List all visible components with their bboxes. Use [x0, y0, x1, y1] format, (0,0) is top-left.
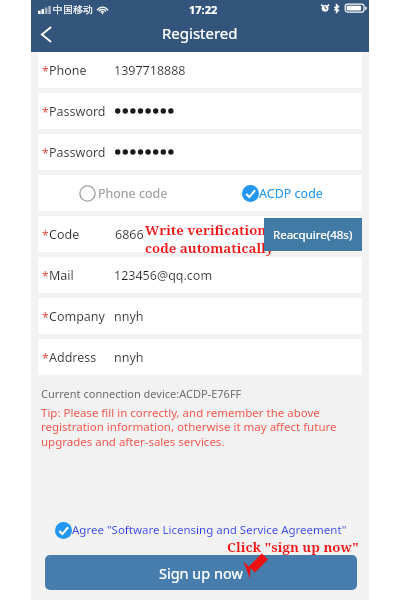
- staticText: Agree "Software Licensing and Service Ag…: [72, 522, 347, 538]
- staticText: Phone: [49, 62, 87, 79]
- staticText: 中国移动: [53, 3, 93, 16]
- staticText: code automatically: [145, 239, 274, 257]
- staticText: Company: [49, 308, 105, 325]
- staticText: Current connection device:ACDP-E76FF: [41, 386, 242, 401]
- staticText: Password: [49, 103, 106, 120]
- button[interactable]: Phone code: [79, 175, 168, 211]
- staticText: *: [42, 104, 49, 120]
- staticText: Phone code: [98, 185, 168, 202]
- staticText: Click "sign up now": [227, 538, 359, 556]
- button[interactable]: Back: [31, 19, 60, 52]
- staticText: *: [42, 145, 49, 161]
- staticText: Sign up now: [159, 563, 243, 583]
- staticText: nnyh: [114, 349, 144, 366]
- staticText: ACDP code: [259, 185, 323, 202]
- staticText: *: [42, 309, 49, 325]
- button[interactable]: ACDP code: [242, 175, 323, 211]
- button[interactable]: Sign up now: [45, 555, 357, 590]
- staticText: Password: [49, 144, 106, 161]
- staticText: Address: [49, 349, 97, 366]
- button[interactable]: Agree "Software Licensing and Service Ag…: [55, 519, 347, 541]
- staticText: *: [42, 268, 49, 284]
- staticText: Code: [49, 226, 80, 243]
- staticText: Registered: [162, 23, 238, 43]
- staticText: Mail: [49, 267, 74, 284]
- staticText: 6866: [115, 226, 144, 243]
- button[interactable]: *: [38, 52, 362, 88]
- button[interactable]: *: [38, 298, 362, 334]
- staticText: 123456@qq.com: [114, 267, 213, 284]
- button[interactable]: *: [38, 93, 362, 129]
- staticText: 1397718888: [114, 62, 186, 79]
- staticText: *: [42, 350, 49, 366]
- staticText: *: [42, 227, 49, 243]
- staticText: 17:22: [189, 2, 218, 17]
- staticText: Write verification: [145, 221, 267, 239]
- staticText: *: [42, 63, 49, 79]
- button[interactable]: *: [38, 339, 362, 375]
- button[interactable]: *: [38, 257, 362, 293]
- staticText: nnyh: [114, 308, 144, 325]
- staticText: Tip: Please fill in correctly, and remem…: [41, 405, 347, 450]
- button[interactable]: Reacquire(48s): [264, 218, 362, 251]
- staticText: Reacquire(48s): [273, 227, 353, 243]
- button[interactable]: *: [38, 134, 362, 170]
